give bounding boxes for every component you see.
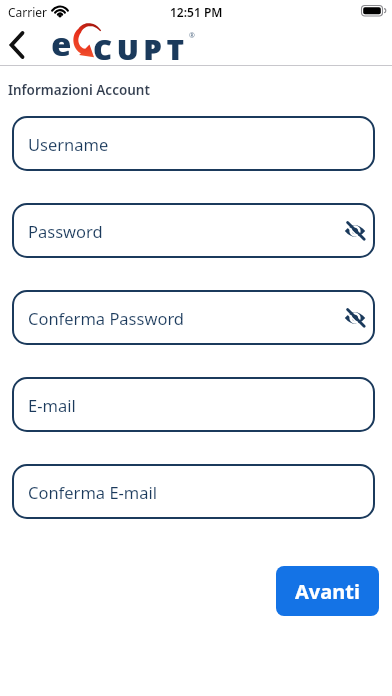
- staticText: Conferma Password: [28, 307, 185, 329]
- button[interactable]: Password: [12, 203, 375, 258]
- staticText: Informazioni Account: [8, 81, 150, 99]
- staticText: E-mail: [28, 394, 76, 416]
- button[interactable]: Conferma Password: [12, 290, 375, 345]
- button[interactable]: [3, 29, 35, 61]
- staticText: Avanti: [295, 578, 360, 605]
- staticText: CUPT: [93, 30, 189, 68]
- button[interactable]: Conferma E-mail: [12, 464, 375, 519]
- staticText: e: [51, 22, 71, 65]
- button[interactable]: E-mail: [12, 377, 375, 432]
- staticText: Password: [28, 220, 103, 242]
- staticText: CUPT: [94, 30, 190, 68]
- staticText: Conferma E-mail: [28, 481, 158, 503]
- staticText: ®: [189, 31, 195, 41]
- staticText: 12:51 PM: [170, 4, 223, 20]
- button[interactable]: Avanti: [276, 566, 379, 616]
- staticText: Username: [28, 133, 109, 155]
- staticText: Carrier: [8, 4, 48, 20]
- staticText: e: [52, 22, 72, 65]
- button[interactable]: Username: [12, 116, 375, 171]
